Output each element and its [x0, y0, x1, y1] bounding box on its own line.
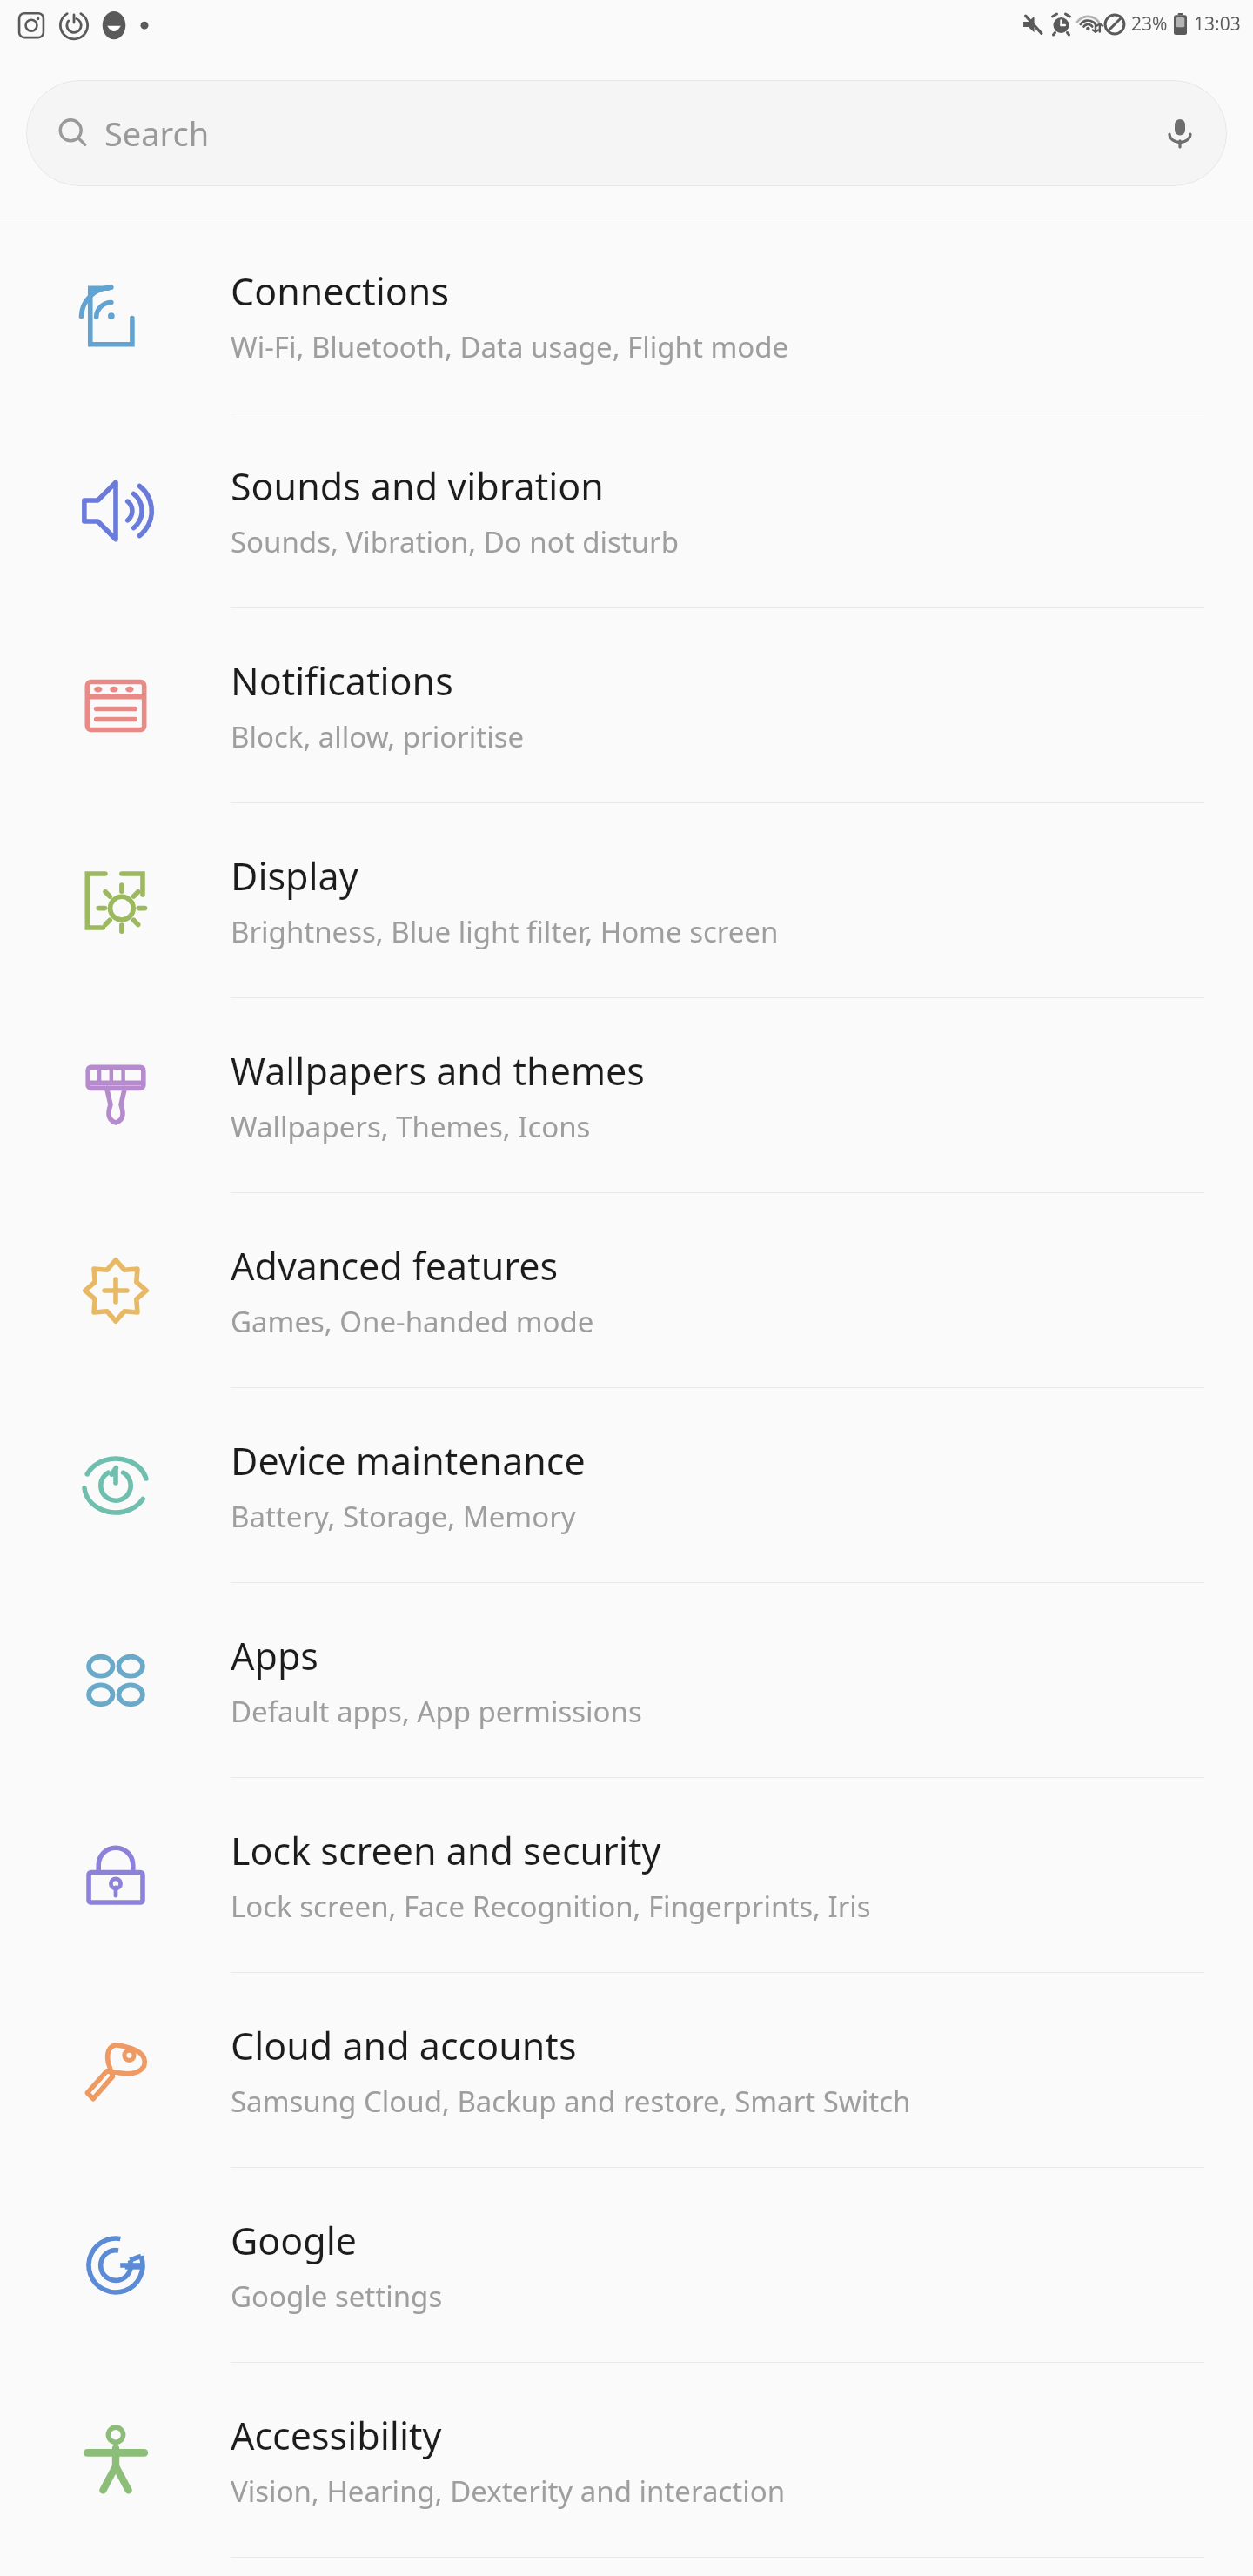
button[interactable]: Wallpapers and themes	[0, 998, 1253, 1192]
staticText: Games, One-handed mode	[231, 1302, 594, 1341]
staticText: Wallpapers, Themes, Icons	[231, 1107, 591, 1146]
staticText: Apps	[231, 1630, 318, 1681]
staticText: Wi-Fi, Bluetooth, Data usage, Flight mod…	[231, 327, 789, 366]
button[interactable]: Accessibility	[0, 2363, 1253, 2557]
staticText: Battery, Storage, Memory	[231, 1497, 576, 1536]
staticText: 23%	[1131, 11, 1168, 37]
button[interactable]: Apps	[0, 1583, 1253, 1777]
button[interactable]: Connections	[0, 218, 1253, 413]
staticText: 13:03	[1194, 11, 1241, 37]
staticText: Default apps, App permissions	[231, 1692, 642, 1731]
staticText: Accessibility	[231, 2410, 442, 2461]
button[interactable]: Advanced features	[0, 1193, 1253, 1387]
staticText: Display	[231, 850, 358, 902]
staticText: Lock screen, Face Recognition, Fingerpri…	[231, 1887, 871, 1926]
staticText: Lock screen and security	[231, 1825, 661, 1876]
staticText: Samsung Cloud, Backup and restore, Smart…	[231, 2082, 911, 2121]
staticText: Block, allow, prioritise	[231, 717, 525, 756]
staticText: Vision, Hearing, Dexterity and interacti…	[231, 2472, 786, 2511]
staticText: Notifications	[231, 655, 453, 707]
button[interactable]: Sounds and vibration	[0, 413, 1253, 607]
other: Voice search	[1163, 116, 1197, 151]
staticText: Google settings	[231, 2277, 443, 2316]
button[interactable]: Search	[26, 80, 1227, 186]
staticText: Google	[231, 2215, 358, 2266]
staticText: Wallpapers and themes	[231, 1045, 645, 1097]
staticText: Device maintenance	[231, 1435, 586, 1486]
button[interactable]: Device maintenance	[0, 1388, 1253, 1582]
button[interactable]: Lock screen and security	[0, 1778, 1253, 1972]
button[interactable]: Google	[0, 2168, 1253, 2362]
staticText: Sounds, Vibration, Do not disturb	[231, 522, 680, 561]
staticText: Cloud and accounts	[231, 2020, 577, 2071]
button[interactable]: Display	[0, 803, 1253, 997]
staticText: Brightness, Blue light filter, Home scre…	[231, 912, 779, 951]
staticText: Advanced features	[231, 1240, 558, 1291]
button[interactable]: Notifications	[0, 608, 1253, 802]
button[interactable]: Cloud and accounts	[0, 1973, 1253, 2167]
staticText: Connections	[231, 265, 450, 317]
staticText: Search	[104, 111, 210, 156]
staticText: Sounds and vibration	[231, 460, 604, 512]
